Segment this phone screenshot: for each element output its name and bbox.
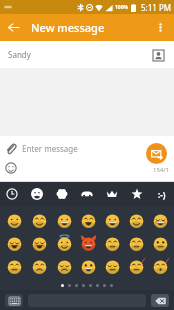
button[interactable]: Emoji 1 [2, 208, 27, 232]
button[interactable]: Emoji 3 [52, 208, 76, 232]
button[interactable]: Emoji 4 [76, 208, 100, 232]
button[interactable]: Nature [49, 182, 74, 206]
button[interactable]: Recent [0, 182, 24, 206]
button[interactable]: Emoji 6 [124, 208, 148, 232]
button[interactable]: Emoji [2, 159, 20, 177]
button[interactable]: Favorites [124, 182, 149, 206]
button[interactable]: Emoji 21 [148, 255, 172, 278]
staticText: 154/1 [153, 166, 169, 174]
button[interactable]: Emoji 13 [124, 232, 148, 255]
button[interactable]: Emoji 2 [27, 208, 52, 232]
button[interactable]: Back [0, 14, 27, 41]
button[interactable]: Send [146, 143, 167, 164]
button[interactable]: Emoji 10 [52, 232, 76, 255]
button[interactable]: Emoticons [149, 182, 174, 206]
button[interactable]: Enter message [22, 143, 78, 154]
button[interactable]: Emoji 12 [100, 232, 124, 255]
staticText: New message [31, 20, 105, 35]
button[interactable]: Emoji 18 [76, 255, 100, 278]
button[interactable]: Emoji 7 [148, 208, 172, 232]
button[interactable]: Sandy [0, 41, 174, 68]
button[interactable]: Smileys [24, 182, 49, 206]
button[interactable]: Attach [2, 140, 20, 158]
button[interactable]: Emoji 17 [52, 255, 76, 278]
staticText: Sandy [8, 49, 31, 60]
button[interactable]: Emoji 5 [100, 208, 124, 232]
button[interactable]: Keyboard [5, 294, 23, 307]
button[interactable]: Travel [74, 182, 99, 206]
button[interactable]: Emoji 15 [2, 255, 27, 278]
staticText: 5:11 PM [141, 2, 172, 13]
button[interactable]: Emoji 9 [27, 232, 52, 255]
button[interactable]: Emoji 16 [27, 255, 52, 278]
button[interactable]: Emoji 8 [2, 232, 27, 255]
button[interactable]: Backspace [151, 294, 169, 307]
button[interactable]: Emoji 14 [148, 232, 172, 255]
button[interactable]: Emoji 19 [100, 255, 124, 278]
button[interactable]: More options [147, 14, 174, 41]
button[interactable]: Emoji 11 [76, 232, 100, 255]
staticText: :-) [158, 189, 166, 200]
button[interactable]: Emoji 20 [124, 255, 148, 278]
button[interactable]: Objects [99, 182, 124, 206]
staticText: 100% [115, 4, 129, 11]
button[interactable]: Add contact [150, 47, 166, 63]
